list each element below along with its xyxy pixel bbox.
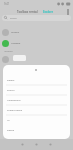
button[interactable]: Notifications	[3, 95, 70, 105]
button[interactable]: Delete	[3, 125, 70, 135]
staticText: Photos	[7, 89, 15, 92]
staticText: Toolbox	[11, 31, 20, 34]
staticText: Delete	[7, 129, 14, 132]
staticText: Notifications	[7, 99, 21, 102]
button[interactable]: Search	[2, 15, 71, 21]
button[interactable]: Toolbox	[0, 29, 73, 36]
button[interactable]: Available	[0, 40, 73, 47]
button[interactable]: Details	[3, 75, 70, 85]
button[interactable]: Shared media	[3, 105, 70, 115]
staticText: Available	[11, 42, 21, 45]
button[interactable]: Explore	[41, 8, 56, 15]
staticText: 9:41	[4, 2, 10, 6]
button[interactable]: Photos	[3, 85, 70, 95]
staticText: Toolbox rental	[17, 10, 38, 14]
button[interactable]: All	[3, 115, 70, 125]
staticText: Details	[7, 79, 15, 82]
staticText: All	[7, 119, 10, 122]
staticText: Search	[10, 17, 17, 20]
button[interactable]	[0, 56, 73, 63]
staticText: Shared media	[7, 109, 22, 112]
button[interactable]: More options	[64, 8, 71, 15]
staticText: Explore	[43, 10, 54, 13]
staticText: Yesterday	[4, 50, 13, 53]
